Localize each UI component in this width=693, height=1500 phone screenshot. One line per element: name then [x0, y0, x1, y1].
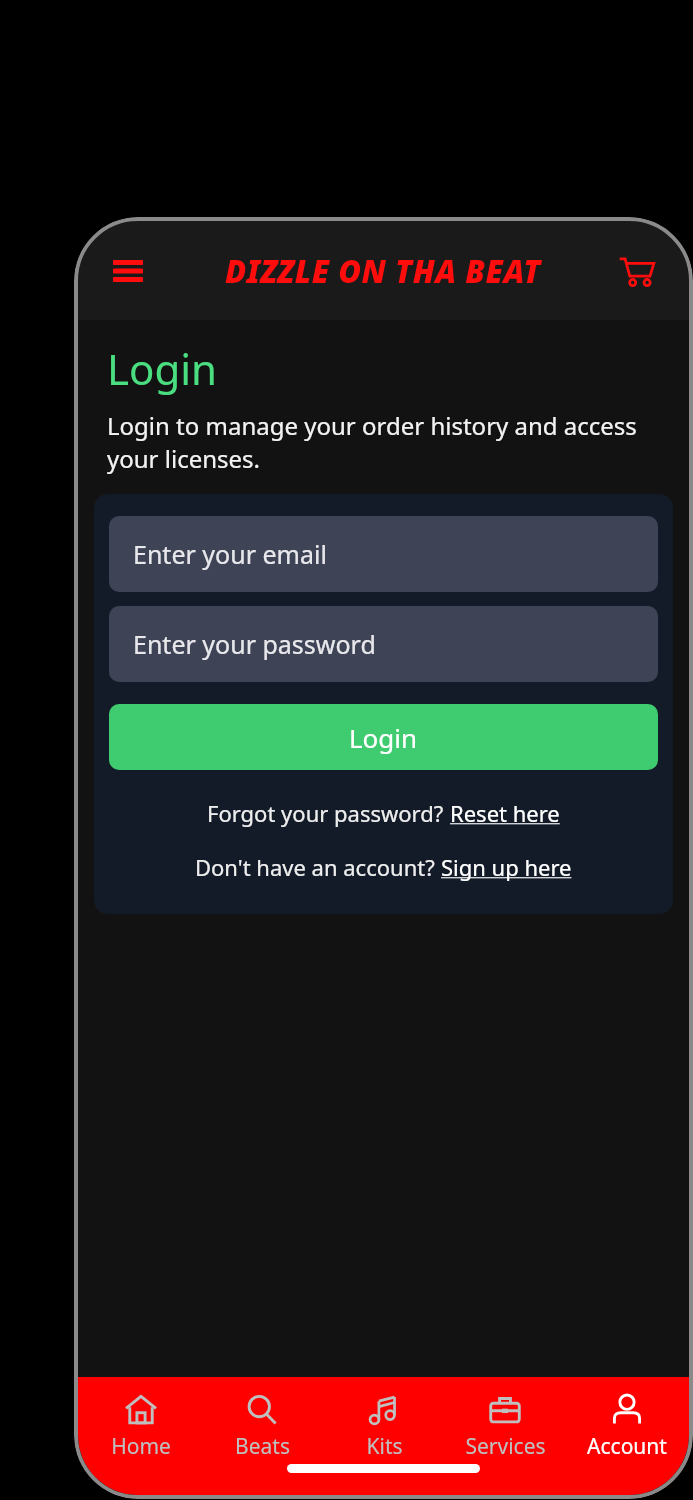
button[interactable]: Don't have an account? [109, 852, 658, 882]
button[interactable]: Services [446, 1389, 564, 1465]
staticText: Home [111, 1432, 171, 1461]
staticText: Sign up here [441, 852, 572, 882]
staticText: DIZZLE ON THA BEAT [225, 250, 541, 292]
staticText: Enter your password [133, 627, 376, 661]
button[interactable]: Enter your password [109, 606, 658, 682]
staticText: Forgot your password? [207, 798, 450, 828]
staticText: Reset here [450, 798, 560, 828]
button[interactable]: Enter your email [109, 516, 658, 592]
staticText: Services [465, 1432, 546, 1461]
button[interactable]: Menu [102, 245, 154, 297]
staticText: Beats [235, 1432, 290, 1461]
button[interactable]: Cart [611, 245, 663, 297]
staticText: 9:47 [124, 261, 174, 295]
button[interactable]: Beats [203, 1389, 321, 1465]
staticText: Login [107, 340, 218, 397]
staticText: Don't have an account? [195, 852, 441, 882]
staticText: Kits [366, 1432, 403, 1461]
staticText: Enter your email [133, 537, 327, 571]
staticText: Login to manage your order history and a… [107, 409, 663, 475]
button[interactable]: Home [82, 1389, 200, 1465]
button[interactable]: Kits [325, 1389, 443, 1465]
staticText: Login [349, 720, 418, 755]
button[interactable]: Account [568, 1389, 686, 1465]
button[interactable]: Forgot your password? [109, 798, 658, 828]
button[interactable]: Login [109, 704, 658, 770]
staticText: Account [587, 1432, 667, 1461]
